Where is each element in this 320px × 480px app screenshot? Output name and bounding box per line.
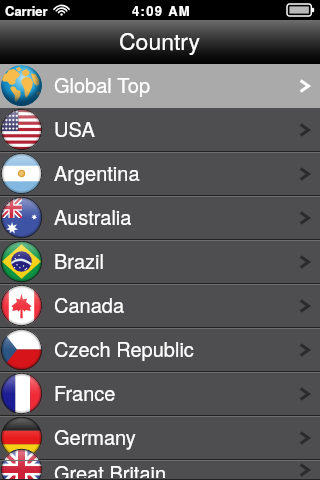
button[interactable]: Canada — [0, 284, 320, 328]
staticText: Country — [119, 24, 201, 57]
button[interactable]: Brazil — [0, 240, 320, 284]
staticText: Carrier — [5, 1, 48, 20]
button[interactable]: Australia — [0, 196, 320, 240]
staticText: Brazil — [54, 246, 104, 275]
button[interactable]: Great Britain — [0, 460, 320, 480]
staticText: Great Britain — [54, 458, 167, 478]
button[interactable]: Germany — [0, 416, 320, 460]
staticText: France — [54, 378, 116, 407]
staticText: Argentina — [54, 158, 140, 187]
staticText: Australia — [54, 202, 132, 231]
staticText: USA — [54, 114, 95, 143]
button[interactable]: Czech Republic — [0, 328, 320, 372]
staticText: 4:09 AM — [132, 1, 191, 20]
button[interactable]: Global Top — [0, 64, 320, 108]
staticText: Global Top — [54, 70, 151, 99]
button[interactable]: USA — [0, 108, 320, 152]
button[interactable]: Argentina — [0, 152, 320, 196]
staticText: Canada — [54, 290, 125, 319]
button[interactable]: France — [0, 372, 320, 416]
staticText: Czech Republic — [54, 334, 194, 363]
staticText: Germany — [54, 422, 136, 451]
